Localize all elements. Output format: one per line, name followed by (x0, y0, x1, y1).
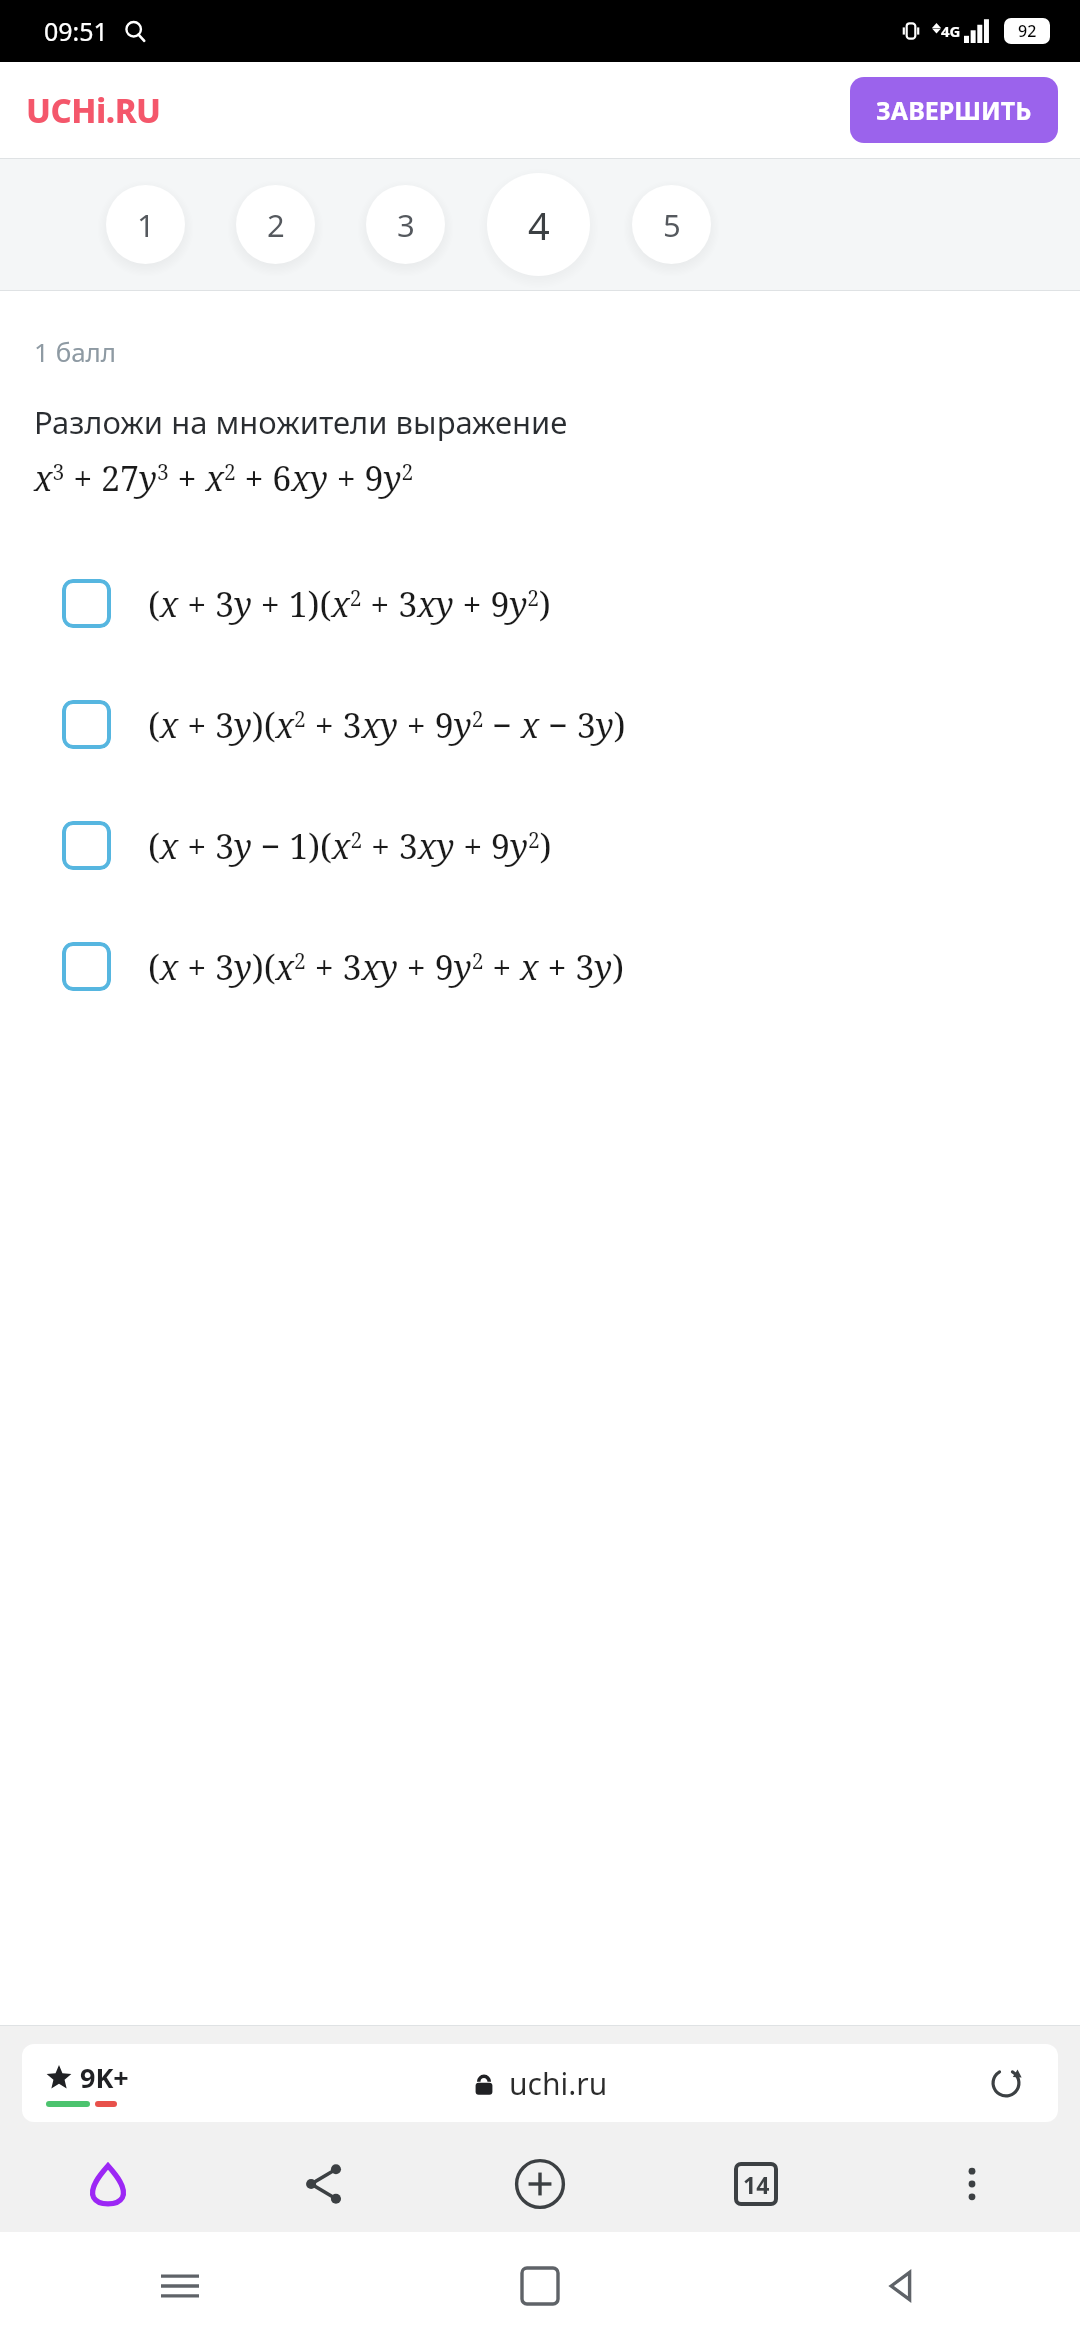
button[interactable]: ЗАВЕРШИТЬ (850, 77, 1058, 143)
staticText: ЗАВЕРШИТЬ (876, 93, 1032, 127)
staticText: 92 (1018, 20, 1037, 42)
staticText: (x + 3y − 1)(x2 + 3xy + 9y2) (148, 823, 552, 869)
staticText: 1 (137, 204, 155, 246)
button[interactable]: More options (864, 2136, 1080, 2232)
staticText: 5 (663, 204, 681, 246)
button[interactable]: (x + 3y)(x2 + 3xy + 9y2 + x + 3y) (0, 906, 1080, 1027)
staticText: (x + 3y + 1)(x2 + 3xy + 9y2) (148, 581, 551, 627)
staticText: UCHi.RU (26, 88, 161, 133)
button[interactable]: 1 (106, 185, 185, 264)
button[interactable]: Share (216, 2136, 432, 2232)
button[interactable]: Back (720, 2232, 1080, 2340)
staticText: 09:51 (44, 14, 108, 48)
staticText: Разложи на множители выражение (34, 401, 568, 443)
staticText: uchi.ru (509, 2063, 608, 2104)
staticText: (x + 3y)(x2 + 3xy + 9y2 − x − 3y) (148, 702, 626, 748)
button[interactable]: (x + 3y)(x2 + 3xy + 9y2 − x − 3y) (0, 664, 1080, 785)
button[interactable]: 4 (487, 173, 590, 276)
staticText: (x + 3y)(x2 + 3xy + 9y2 + x + 3y) (148, 944, 625, 990)
staticText: 9K+ (80, 2059, 129, 2096)
button[interactable]: New tab (432, 2136, 648, 2232)
button[interactable]: 9K+ (22, 2044, 1058, 2122)
staticText: 4G (941, 21, 961, 41)
staticText: 1 балл (34, 334, 117, 369)
button[interactable]: Home (360, 2232, 720, 2340)
button[interactable]: (x + 3y − 1)(x2 + 3xy + 9y2) (0, 785, 1080, 906)
staticText: 14 (743, 2169, 770, 2200)
button[interactable]: Home (0, 2136, 216, 2232)
staticText: 2 (267, 204, 285, 246)
button[interactable]: 3 (366, 185, 445, 264)
button[interactable]: Recent apps (0, 2232, 360, 2340)
button[interactable]: Tabs (648, 2136, 864, 2232)
button[interactable]: 5 (632, 185, 711, 264)
staticText: 4 (528, 199, 550, 251)
staticText: 3 (397, 204, 415, 246)
button[interactable]: 2 (236, 185, 315, 264)
button[interactable]: (x + 3y + 1)(x2 + 3xy + 9y2) (0, 543, 1080, 664)
staticText: x3 + 27y3 + x2 + 6xy + 9y2 (34, 455, 414, 501)
button[interactable]: Reload (980, 2057, 1032, 2109)
